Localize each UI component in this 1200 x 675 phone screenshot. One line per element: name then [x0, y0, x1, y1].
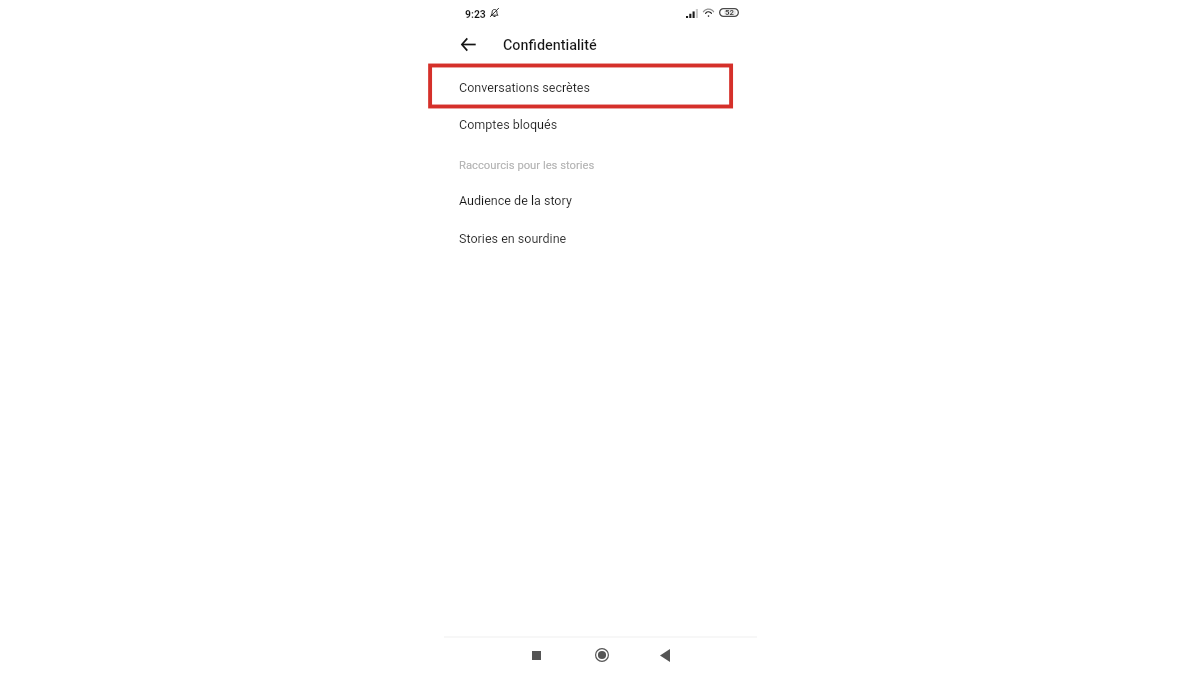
- staticText: Confidentialité: [503, 37, 597, 54]
- button[interactable]: Recent apps: [519, 638, 554, 672]
- staticText: Comptes bloqués: [459, 117, 558, 132]
- staticText: Conversations secrètes: [459, 80, 591, 95]
- staticText: 52: [725, 8, 734, 17]
- button[interactable]: Home: [584, 638, 619, 672]
- button[interactable]: Audience de la story: [444, 182, 757, 219]
- button[interactable]: Conversations secrètes: [444, 69, 757, 106]
- staticText: 9:23: [465, 8, 486, 20]
- staticText: Raccourcis pour les stories: [459, 159, 595, 172]
- button[interactable]: Comptes bloqués: [444, 106, 757, 143]
- button[interactable]: Back: [647, 638, 682, 672]
- staticText: Stories en sourdine: [459, 231, 567, 246]
- staticText: Audience de la story: [459, 193, 572, 208]
- button[interactable]: Stories en sourdine: [444, 220, 757, 257]
- button[interactable]: Back: [455, 32, 481, 57]
- button[interactable]: Raccourcis pour les stories: [444, 147, 757, 184]
